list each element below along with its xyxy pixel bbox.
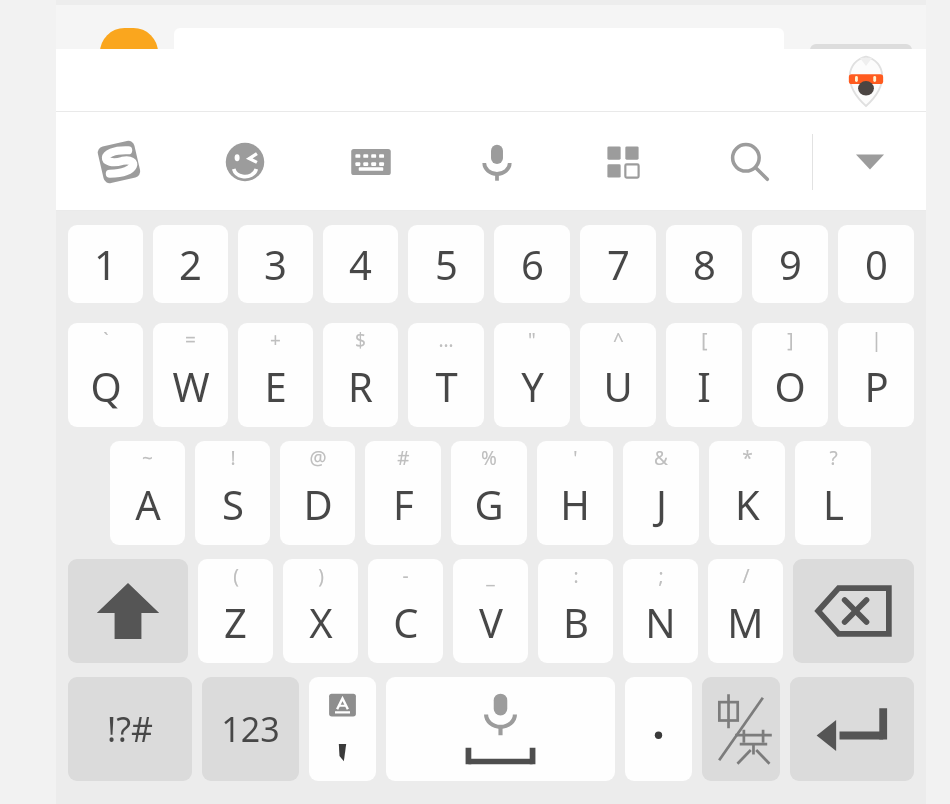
button[interactable]: Shift — [68, 559, 188, 663]
button[interactable]: Avatar — [100, 28, 158, 77]
staticText: U — [603, 359, 633, 413]
button[interactable]: ` — [68, 323, 143, 427]
staticText: ~ — [142, 445, 153, 471]
staticText: ' — [573, 445, 578, 471]
button[interactable]: Send — [810, 44, 912, 82]
staticText: 0 — [865, 237, 888, 291]
button[interactable]: $ — [323, 323, 398, 427]
button[interactable]: 3 — [238, 225, 313, 303]
button[interactable]: Chinese English — [702, 677, 780, 781]
button[interactable]: | — [838, 323, 914, 427]
staticText: : — [573, 563, 579, 589]
button[interactable]: ] — [752, 323, 828, 427]
button[interactable]: 2 — [153, 225, 228, 303]
staticText: @ — [309, 445, 327, 471]
staticText: ( — [233, 563, 239, 589]
button[interactable]: 5 — [408, 225, 484, 303]
button[interactable]: " — [494, 323, 570, 427]
button[interactable]: [ — [666, 323, 742, 427]
staticText: W — [172, 359, 210, 413]
button[interactable]: 0 — [838, 225, 914, 303]
staticText: 2 — [179, 237, 202, 291]
staticText: ! — [230, 445, 236, 471]
button[interactable]: + — [238, 323, 313, 427]
staticText: L — [823, 477, 844, 531]
button[interactable]: Hide keyboard — [813, 112, 926, 211]
button[interactable]: ! — [195, 441, 270, 545]
button[interactable]: … — [408, 323, 484, 427]
staticText: … — [438, 327, 454, 353]
button[interactable]: 9 — [752, 225, 828, 303]
button[interactable]: 1 — [68, 225, 143, 303]
staticText: " — [528, 327, 536, 353]
staticText: T — [435, 359, 458, 413]
staticText: H — [560, 477, 590, 531]
staticText: G — [474, 477, 504, 531]
staticText: % — [481, 445, 497, 471]
button[interactable]: 7 — [580, 225, 656, 303]
button[interactable]: - — [368, 559, 443, 663]
staticText: 1 — [94, 237, 117, 291]
button[interactable]: % — [451, 441, 527, 545]
button[interactable]: Sogou assistant — [844, 55, 888, 107]
button[interactable]: Enter — [790, 677, 914, 781]
staticText: & — [654, 445, 668, 471]
staticText: [ — [701, 327, 708, 353]
button[interactable]: Period — [625, 677, 692, 781]
staticText: 9 — [779, 237, 802, 291]
button[interactable]: Sogou input — [56, 112, 182, 211]
staticText: E — [264, 359, 287, 413]
staticText: = — [185, 327, 196, 353]
button[interactable]: 6 — [494, 225, 570, 303]
staticText: ] — [787, 327, 794, 353]
button[interactable]: @ — [280, 441, 355, 545]
button[interactable]: _ — [453, 559, 528, 663]
staticText: # — [397, 445, 410, 471]
staticText: 7 — [607, 237, 630, 291]
button[interactable]: ( — [198, 559, 273, 663]
staticText: J — [656, 477, 667, 531]
button[interactable]: * — [709, 441, 785, 545]
button[interactable]: 4 — [323, 225, 398, 303]
staticText: 3 — [264, 237, 287, 291]
button[interactable]: Space — [386, 677, 615, 781]
button[interactable]: # — [365, 441, 441, 545]
button[interactable]: / — [708, 559, 783, 663]
button[interactable]: ^ — [580, 323, 656, 427]
staticText: F — [393, 477, 414, 531]
staticText: Z — [224, 595, 247, 649]
button[interactable]: Search — [686, 112, 812, 211]
button[interactable]: Comma — [309, 677, 376, 781]
button[interactable]: & — [623, 441, 699, 545]
staticText: ^ — [613, 327, 624, 353]
staticText: + — [270, 327, 281, 353]
staticText: M — [727, 595, 764, 649]
button[interactable]: ) — [283, 559, 358, 663]
button[interactable]: ' — [537, 441, 613, 545]
button[interactable]: Keyboard layout — [308, 112, 434, 211]
staticText: A — [135, 477, 161, 531]
staticText: K — [735, 477, 760, 531]
staticText: 4 — [349, 237, 372, 291]
button[interactable]: Emoji — [182, 112, 308, 211]
button[interactable]: ? — [795, 441, 871, 545]
staticText: X — [309, 595, 333, 649]
staticText: V — [479, 595, 503, 649]
button[interactable]: ; — [623, 559, 698, 663]
button[interactable]: 8 — [666, 225, 742, 303]
staticText: ) — [318, 563, 324, 589]
staticText: B — [563, 595, 589, 649]
button[interactable]: Backspace — [793, 559, 914, 663]
button[interactable]: 123 — [202, 677, 299, 781]
staticText: S — [222, 477, 244, 531]
button[interactable]: : — [538, 559, 613, 663]
button[interactable]: = — [153, 323, 228, 427]
staticText: _ — [486, 563, 495, 589]
staticText: C — [393, 595, 419, 649]
button[interactable]: ~ — [110, 441, 185, 545]
staticText: ; — [658, 563, 664, 589]
button[interactable]: Voice input — [434, 112, 560, 211]
button[interactable]: More functions — [560, 112, 686, 211]
button[interactable]: !?# — [68, 677, 192, 781]
